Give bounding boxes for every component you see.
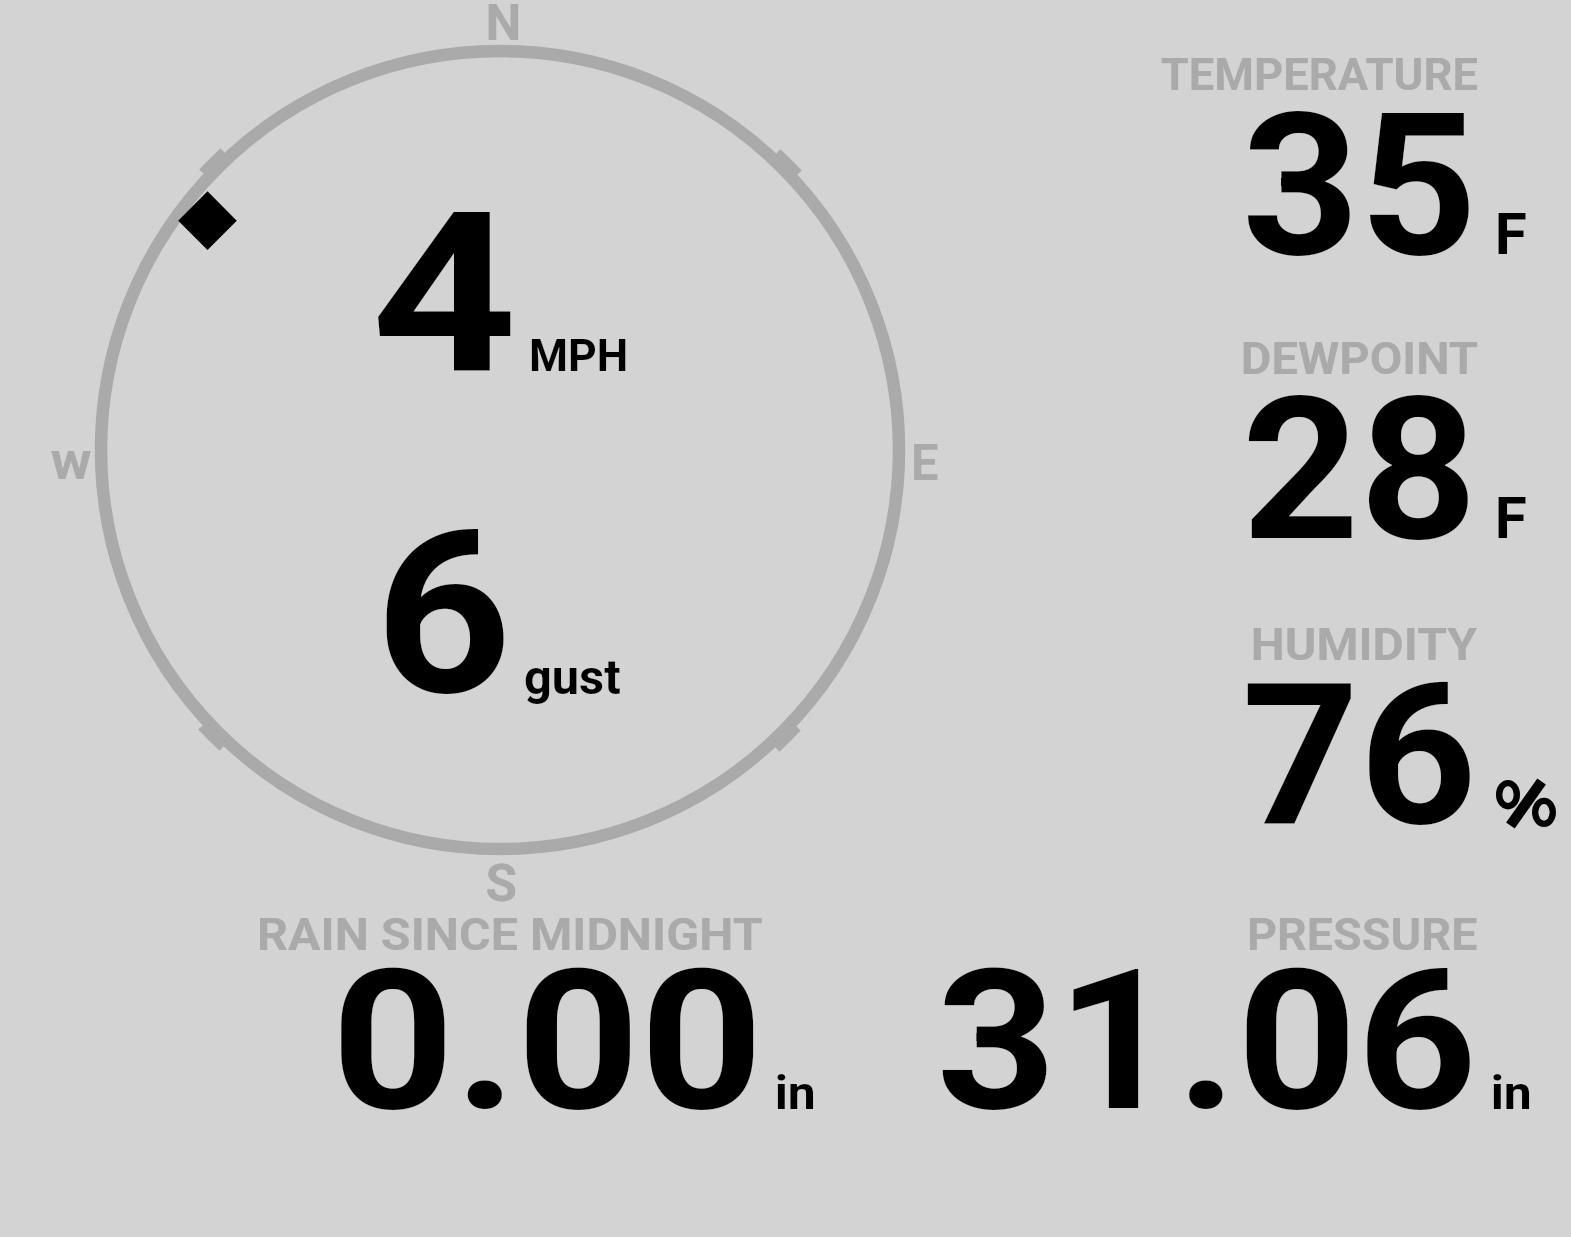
button[interactable]: Pressure 31.06 inches (900, 900, 1560, 1125)
button[interactable]: Dew point 28 degrees Fahrenheit (1000, 320, 1560, 555)
button[interactable]: Rain since midnight 0.00 inches (230, 900, 830, 1125)
button[interactable]: Temperature 35 degrees Fahrenheit (1000, 40, 1560, 270)
button[interactable]: Humidity 76 percent (1000, 605, 1560, 840)
button[interactable]: Wind 4 miles per hour, gusting 6, from t… (80, 20, 930, 890)
